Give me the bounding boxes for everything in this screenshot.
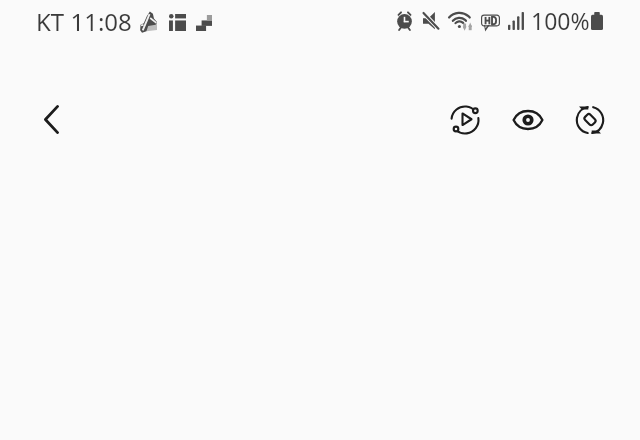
button[interactable]: Back bbox=[25, 93, 77, 145]
button[interactable]: Auto rotate bbox=[566, 96, 614, 144]
button[interactable]: Preview bbox=[504, 96, 552, 144]
staticText: KT 11:08 bbox=[36, 5, 132, 38]
staticText: 100% bbox=[531, 5, 590, 36]
button[interactable]: Slideshow bbox=[441, 96, 489, 144]
